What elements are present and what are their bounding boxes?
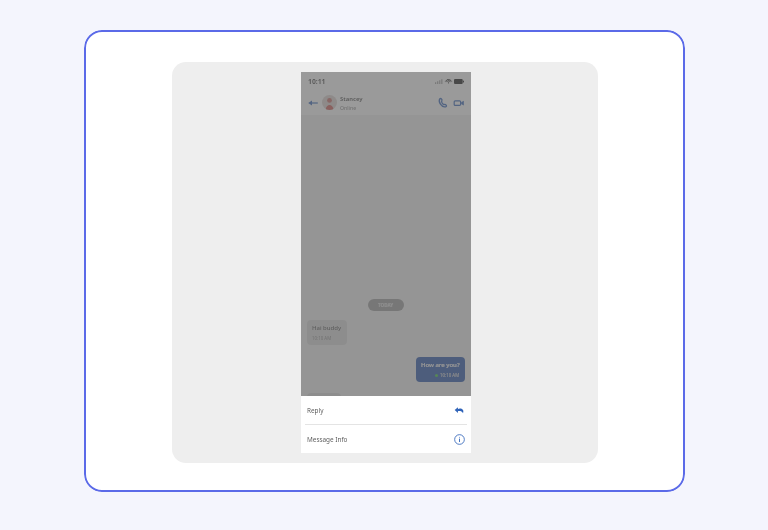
other: Reply bbox=[454, 405, 465, 416]
button[interactable]: Video call bbox=[451, 95, 466, 110]
button[interactable]: TODAY bbox=[368, 299, 404, 311]
staticText: 10:10 AM bbox=[440, 372, 460, 378]
button[interactable]: Back bbox=[306, 96, 320, 110]
staticText: 10:10 AM bbox=[312, 335, 332, 341]
staticText: Message Info bbox=[307, 435, 348, 444]
staticText: Stancey bbox=[340, 95, 363, 103]
button[interactable]: Message Info bbox=[301, 425, 471, 453]
other: Message info bbox=[454, 434, 465, 445]
staticText: TODAY bbox=[378, 302, 394, 308]
staticText: How are you? bbox=[421, 361, 460, 369]
button[interactable] bbox=[413, 429, 465, 453]
button[interactable]: Reply bbox=[301, 396, 471, 424]
staticText: 10:11 bbox=[308, 77, 326, 86]
button[interactable]: Fine bro bbox=[307, 393, 341, 418]
staticText: Hai buddy bbox=[312, 324, 342, 332]
staticText: Reply bbox=[307, 406, 324, 415]
button[interactable]: Hai buddy bbox=[307, 320, 347, 345]
staticText: 10:11 AM bbox=[312, 408, 332, 414]
button[interactable]: Voice call bbox=[435, 95, 450, 110]
staticText: Online bbox=[340, 104, 357, 111]
button[interactable]: How are you? bbox=[416, 357, 465, 382]
